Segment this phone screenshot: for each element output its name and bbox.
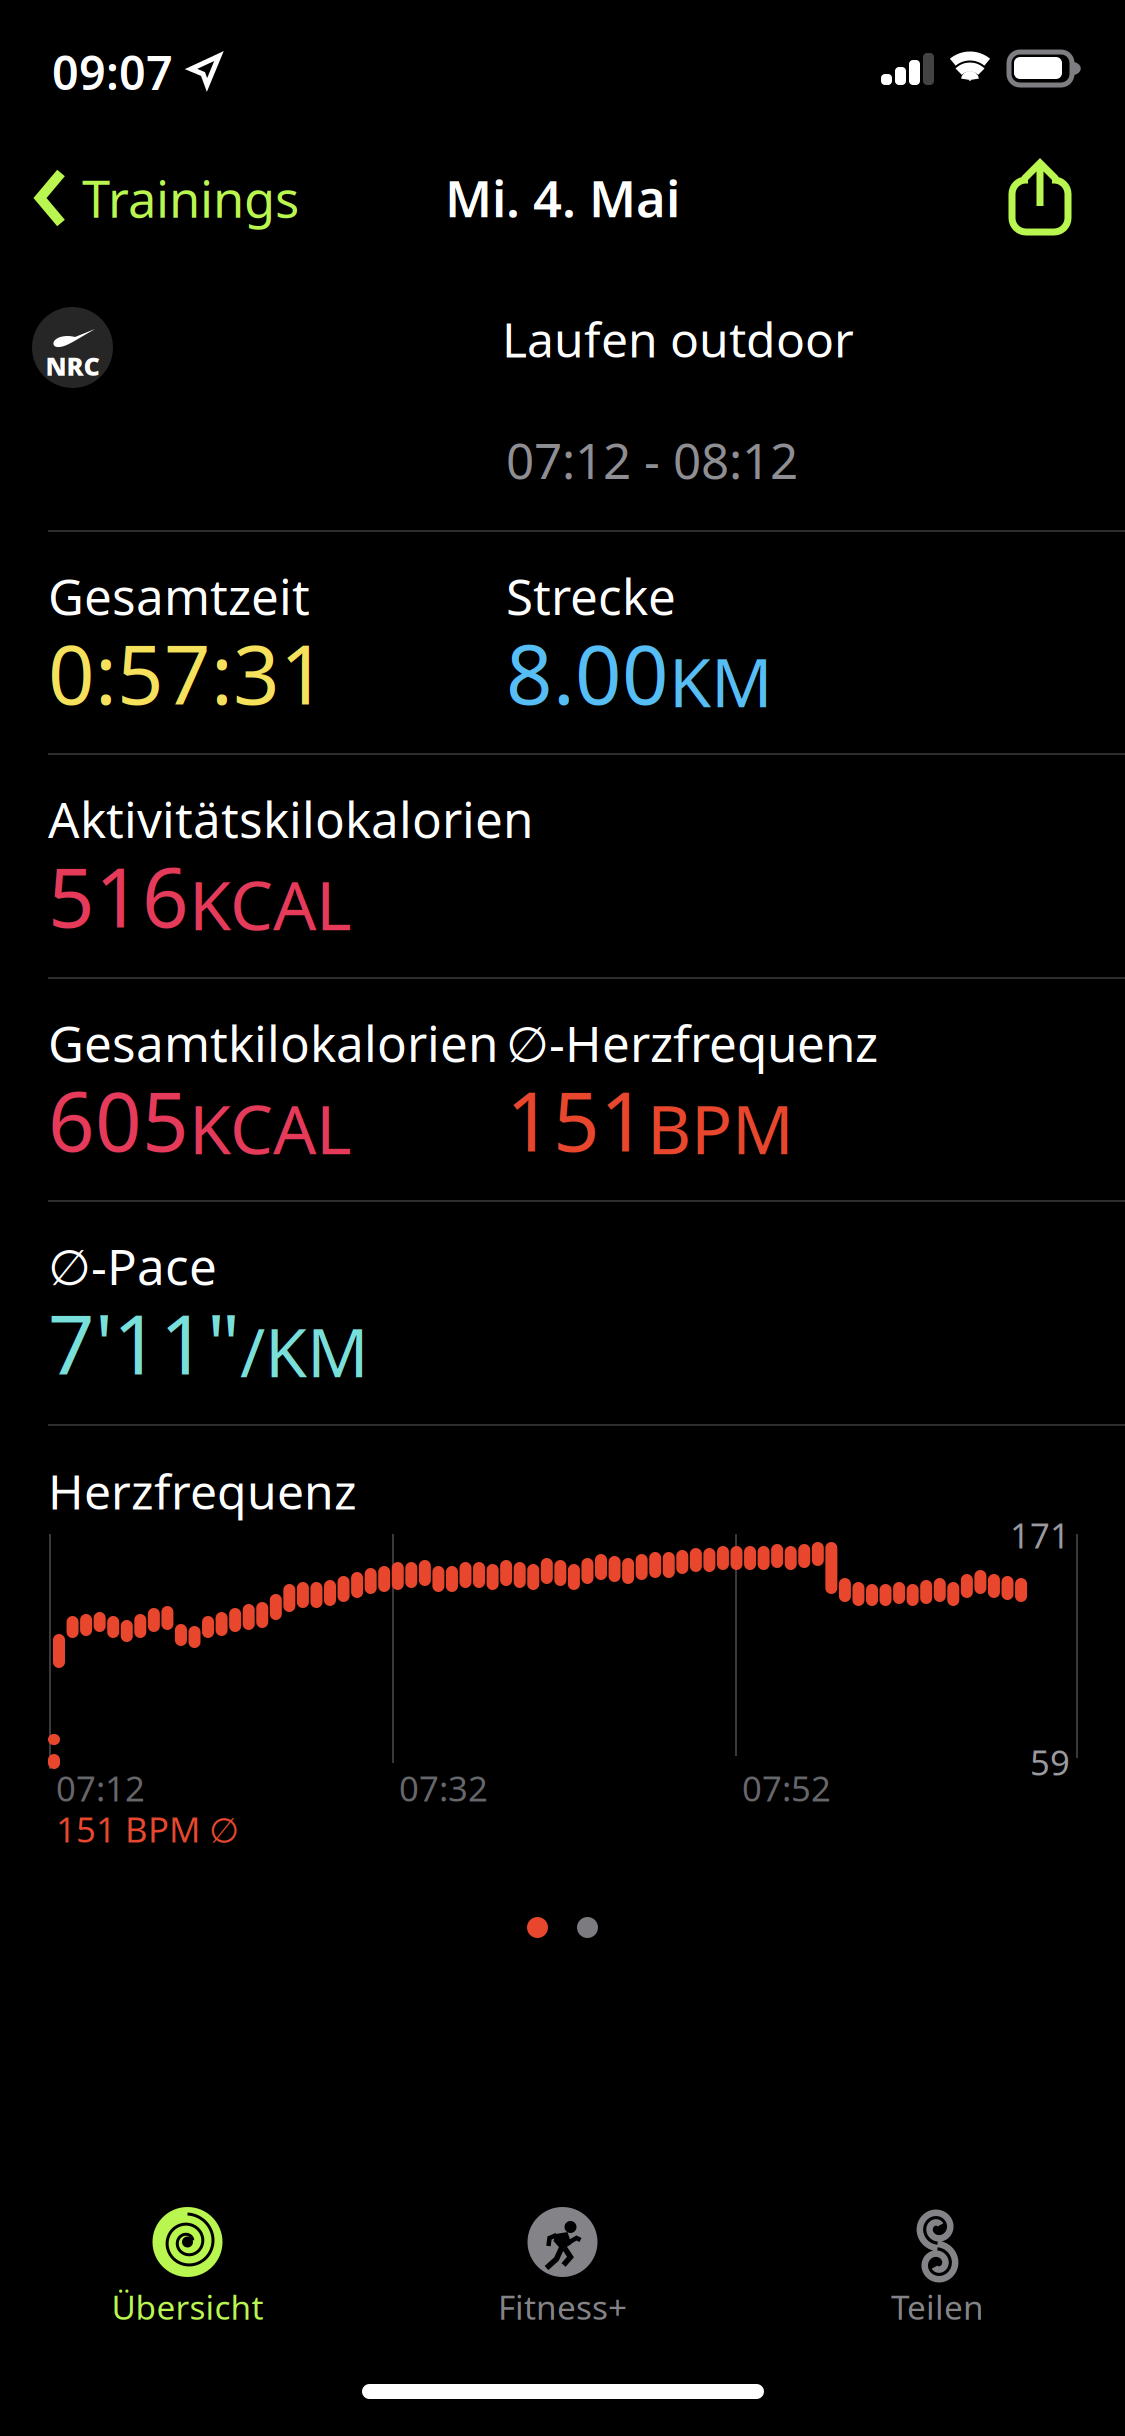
staticText: 59 [1030,1739,1070,1785]
staticText: 8.00 [506,619,669,727]
staticText: 171 [1010,1512,1070,1558]
staticText: Laufen outdoor [502,307,854,371]
staticText: Teilen [891,2285,984,2329]
button[interactable]: Trainings [12,150,321,246]
staticText: ∅-Pace [48,1233,217,1298]
button[interactable]: Fitness+ [375,2207,750,2347]
button[interactable]: Übersicht [0,2207,375,2347]
staticText: 516 [48,842,189,950]
staticText: 0:57:31 [48,619,327,727]
staticText: KCAL [189,859,352,949]
staticText: 151 [506,1066,647,1174]
staticText: KM [669,636,773,726]
staticText: Mi. 4. Mai [445,164,680,231]
staticText: Aktivitätskilokalorien [48,786,533,851]
staticText: Strecke [506,563,676,628]
staticText: 07:32 [399,1765,488,1811]
staticText: 605 [48,1066,189,1174]
button[interactable]: Teilen [750,2207,1125,2347]
staticText: Gesamtkilokalorien [48,1010,498,1075]
staticText: 151 BPM ∅ [56,1806,239,1852]
staticText: Fitness+ [498,2285,627,2329]
staticText: ∅-Herzfrequenz [506,1010,878,1075]
staticText: NRC [45,349,99,383]
staticText: Trainings [82,164,299,232]
button[interactable]: Teilen [986,140,1094,252]
staticText: 07:12 [56,1765,145,1811]
staticText: 07:52 [742,1765,831,1811]
staticText: Herzfrequenz [48,1459,357,1523]
staticText: 7'11" [48,1289,240,1397]
staticText: 07:12 - 08:12 [506,427,798,492]
staticText: BPM [647,1083,794,1173]
staticText: Gesamtzeit [48,563,310,628]
staticText: /KM [240,1306,369,1396]
staticText: Übersicht [111,2285,263,2329]
staticText: 09:07 [52,41,173,103]
staticText: KCAL [189,1083,352,1173]
